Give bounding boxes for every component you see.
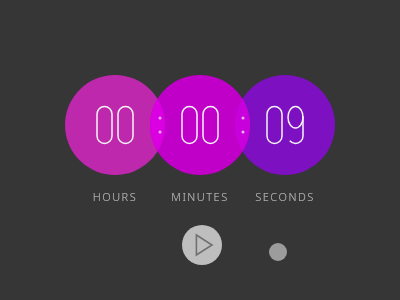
button[interactable]: MINUTES (150, 189, 250, 204)
button[interactable]: SECONDS (235, 189, 335, 204)
staticText: MINUTES (150, 189, 250, 204)
button[interactable]: Start timer (182, 225, 222, 265)
staticText: HOURS (65, 189, 165, 204)
button[interactable]: HOURS (65, 189, 165, 204)
staticText: SECONDS (235, 189, 335, 204)
button[interactable]: Reset timer (269, 243, 287, 261)
